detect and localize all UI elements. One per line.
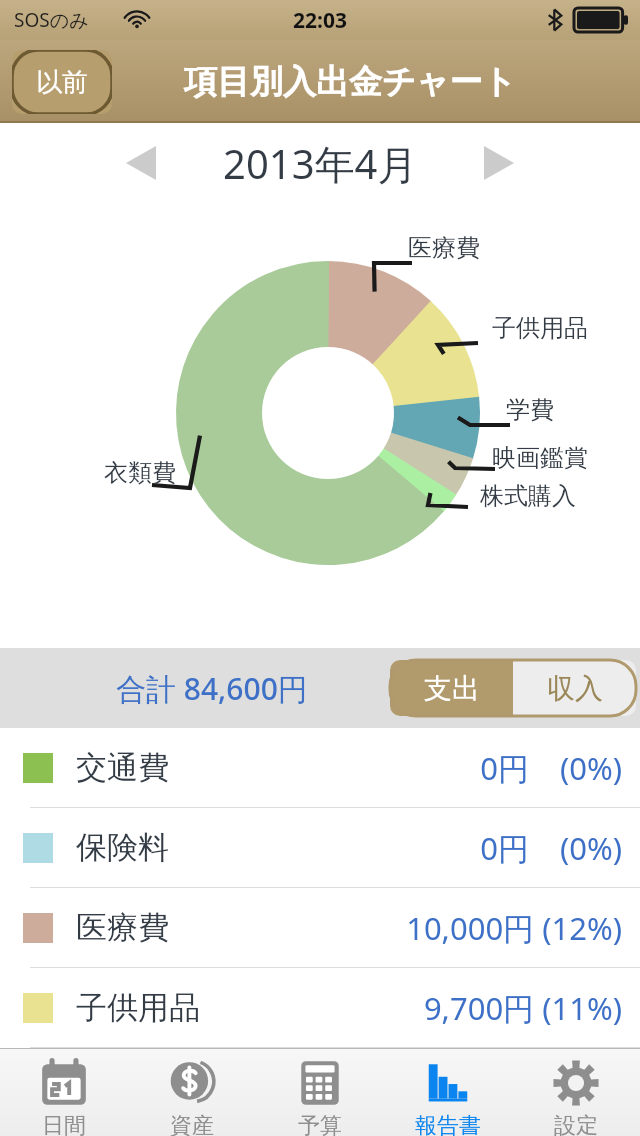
staticText: 株式購入 — [480, 481, 576, 511]
staticText: 資産 — [170, 1112, 214, 1136]
button[interactable]: 収入 — [513, 660, 636, 716]
staticText: 設定 — [554, 1112, 598, 1136]
button[interactable]: 交通費 — [0, 728, 640, 807]
staticText: 10,000円 (12%) — [406, 907, 622, 949]
button[interactable]: 医療費 — [0, 888, 640, 967]
staticText: 2013年4月 — [223, 136, 418, 191]
staticText: 支出 — [424, 671, 480, 706]
button[interactable]: 日間 — [0, 1049, 128, 1136]
button[interactable]: 保険料 — [0, 808, 640, 887]
button[interactable]: 支出 — [390, 660, 513, 716]
staticText: 収入 — [547, 671, 603, 706]
staticText: 衣類費 — [104, 458, 176, 488]
staticText: 22:03 — [293, 6, 347, 35]
staticText: 以前 — [36, 66, 88, 99]
staticText: 予算 — [298, 1112, 342, 1136]
staticText: 子供用品 — [492, 313, 588, 343]
button[interactable]: 資産 — [128, 1049, 256, 1136]
staticText: 0円 (0%) — [480, 747, 622, 789]
staticText: 9,700円 (11%) — [423, 987, 622, 1029]
button[interactable]: 子供用品 — [0, 968, 640, 1047]
button[interactable]: Next month — [476, 140, 522, 186]
staticText: 子供用品 — [76, 988, 200, 1027]
staticText: 項目別入出金チャート — [184, 61, 517, 103]
button[interactable]: 以前 — [12, 50, 112, 114]
button[interactable]: 予算 — [256, 1049, 384, 1136]
staticText: 0円 (0%) — [480, 827, 622, 869]
staticText: 合計 84,600円 — [116, 668, 308, 709]
staticText: 学費 — [506, 395, 554, 425]
staticText: SOSのみ — [14, 7, 89, 33]
staticText: 日間 — [42, 1112, 86, 1136]
staticText: 医療費 — [76, 908, 169, 947]
staticText: 保険料 — [76, 828, 169, 867]
button[interactable]: 報告書 — [384, 1049, 512, 1136]
button[interactable]: 設定 — [512, 1049, 640, 1136]
staticText: 報告書 — [415, 1112, 481, 1136]
button[interactable]: Previous month — [118, 140, 164, 186]
staticText: 交通費 — [76, 748, 169, 787]
staticText: 医療費 — [408, 233, 480, 263]
staticText: 映画鑑賞 — [492, 443, 588, 473]
